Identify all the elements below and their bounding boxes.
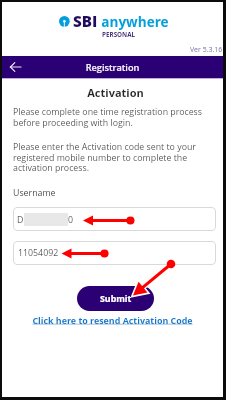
button[interactable]: Submit [77,286,154,311]
staticText: Activation [5,85,226,100]
staticText: Please complete one time registration pr… [13,106,216,128]
button[interactable]: Click here to resend Activation Code [32,314,193,326]
staticText: Submit [100,293,132,305]
staticText: 0 [68,214,74,226]
staticText: Registration [2,61,223,74]
staticText: Please enter the Activation code sent to… [13,141,216,173]
staticText: SBI anywhere [73,11,169,32]
staticText: PERSONAL [102,30,136,39]
staticText: 11054092 [18,247,59,259]
button[interactable]: Back [5,56,27,78]
button[interactable]: D [13,207,216,231]
staticText: Username [13,187,56,199]
staticText: Ver 5.3.16 [190,45,223,55]
staticText: D [17,214,24,226]
button[interactable]: 11054092 [13,241,216,265]
